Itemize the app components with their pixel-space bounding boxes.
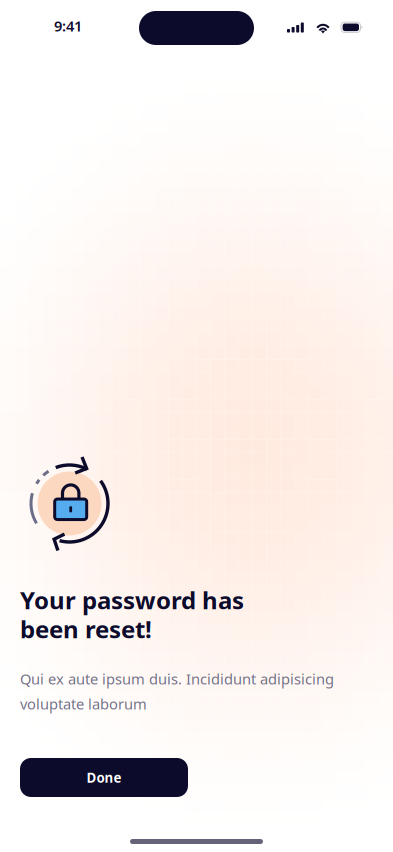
staticText: voluptate laborum [20, 694, 147, 713]
staticText: Done [86, 769, 121, 786]
button[interactable]: Done [20, 758, 188, 797]
staticText: been reset! [20, 613, 152, 645]
staticText: 9:41 [54, 16, 82, 35]
staticText: Your password has [20, 584, 244, 616]
staticText: Qui ex aute ipsum duis. Incididunt adipi… [20, 669, 334, 688]
